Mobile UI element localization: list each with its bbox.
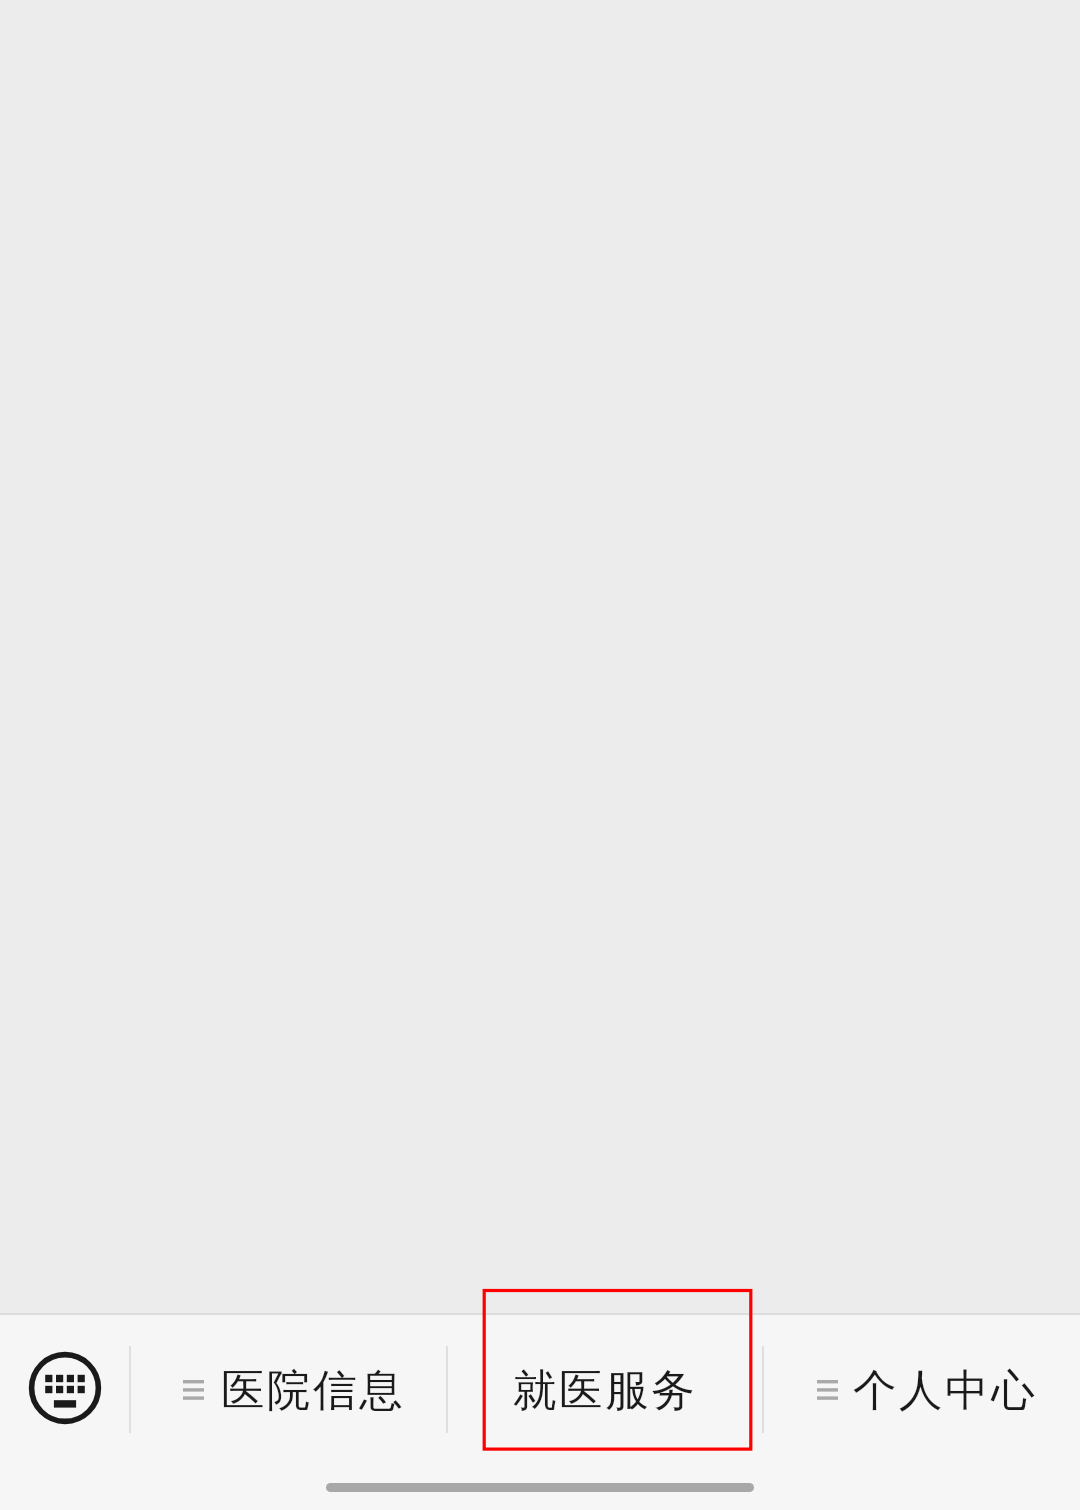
button[interactable]: 医院信息 <box>130 1328 447 1448</box>
staticText: 就医服务 <box>513 1363 698 1418</box>
button[interactable]: 个人中心 <box>763 1328 1080 1448</box>
staticText: 医院信息 <box>221 1363 406 1418</box>
staticText: 个人中心 <box>853 1363 1038 1418</box>
button[interactable]: 就医服务 <box>447 1328 763 1448</box>
button[interactable]: Switch keyboard <box>0 1328 130 1448</box>
